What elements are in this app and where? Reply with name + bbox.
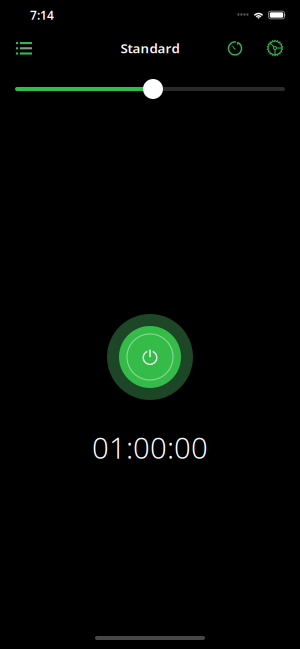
- button[interactable]: Power: [107, 314, 193, 400]
- staticText: Standard: [120, 39, 179, 57]
- button[interactable]: Presets: [6, 30, 42, 66]
- staticText: 01:00:00: [92, 428, 208, 467]
- button[interactable]: Brightness: [0, 79, 300, 99]
- button[interactable]: Timer: [219, 30, 251, 66]
- button[interactable]: Settings: [259, 30, 291, 66]
- staticText: 7:14: [30, 7, 54, 23]
